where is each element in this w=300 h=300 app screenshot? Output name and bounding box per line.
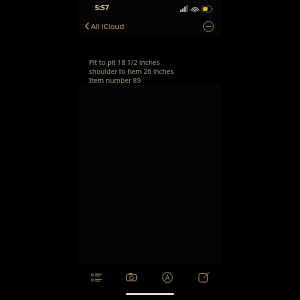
staticText: Item number 89 <box>89 76 141 85</box>
button[interactable]: More options <box>201 19 215 33</box>
button[interactable]: Markup <box>149 264 185 290</box>
button[interactable]: Checklist <box>79 264 114 290</box>
button[interactable]: New note <box>185 264 221 290</box>
staticText: All iCloud <box>91 21 125 31</box>
staticText: Pit to pit 18 1/2 inches <box>89 58 160 67</box>
staticText: 5:57 <box>95 3 109 13</box>
button[interactable]: Take photo <box>114 264 149 290</box>
button[interactable]: All iCloud <box>82 19 128 33</box>
staticText: shoulder to hem 26 inches <box>89 67 174 76</box>
